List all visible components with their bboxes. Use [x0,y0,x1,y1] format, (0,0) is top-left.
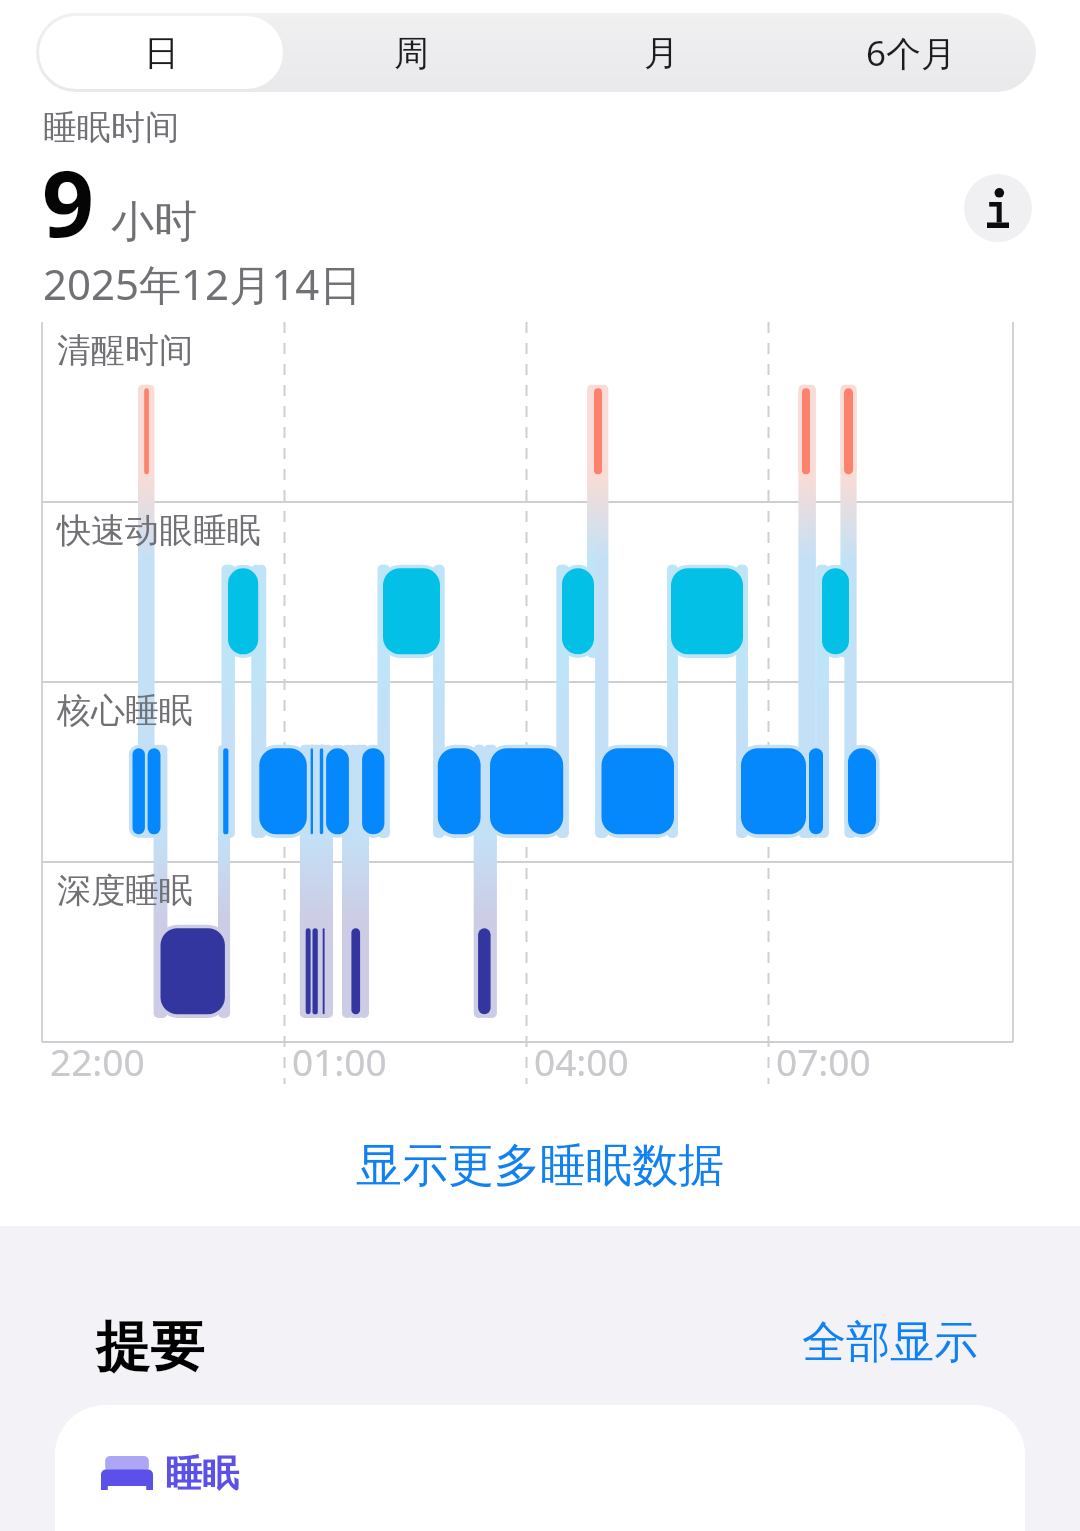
button[interactable]: 日 [39,16,283,89]
staticText: 小时 [111,195,197,249]
staticText: 9 [42,140,95,264]
staticText: 核心睡眠 [57,689,193,732]
button[interactable]: 6个月 [789,16,1033,89]
staticText: 清醒时间 [57,329,193,372]
button[interactable]: 周 [289,16,533,89]
staticText: 2025年12月14日 [43,255,362,312]
button[interactable]: 全部显示 [780,1302,990,1378]
staticText: 07:00 [776,1036,871,1086]
staticText: 睡眠时间 [43,106,179,149]
button[interactable]: 显示更多睡眠数据 [330,1120,750,1212]
staticText: 提要 [96,1313,204,1381]
staticText: 日 [144,31,179,75]
staticText: 01:00 [292,1036,387,1086]
staticText: 6个月 [866,29,957,77]
button[interactable]: 信息 [964,174,1032,242]
staticText: 22:00 [50,1036,145,1086]
button[interactable]: 月 [539,16,783,89]
staticText: 快速动眼睡眠 [57,509,261,552]
staticText: 周 [394,31,429,75]
staticText: 04:00 [534,1036,629,1086]
staticText: 显示更多睡眠数据 [356,1137,724,1195]
staticText: 深度睡眠 [57,869,193,912]
staticText: 全部显示 [802,1315,978,1370]
staticText: 睡眠 [165,1450,239,1497]
button[interactable]: 睡眠 [55,1405,1025,1531]
staticText: 月 [644,31,679,75]
